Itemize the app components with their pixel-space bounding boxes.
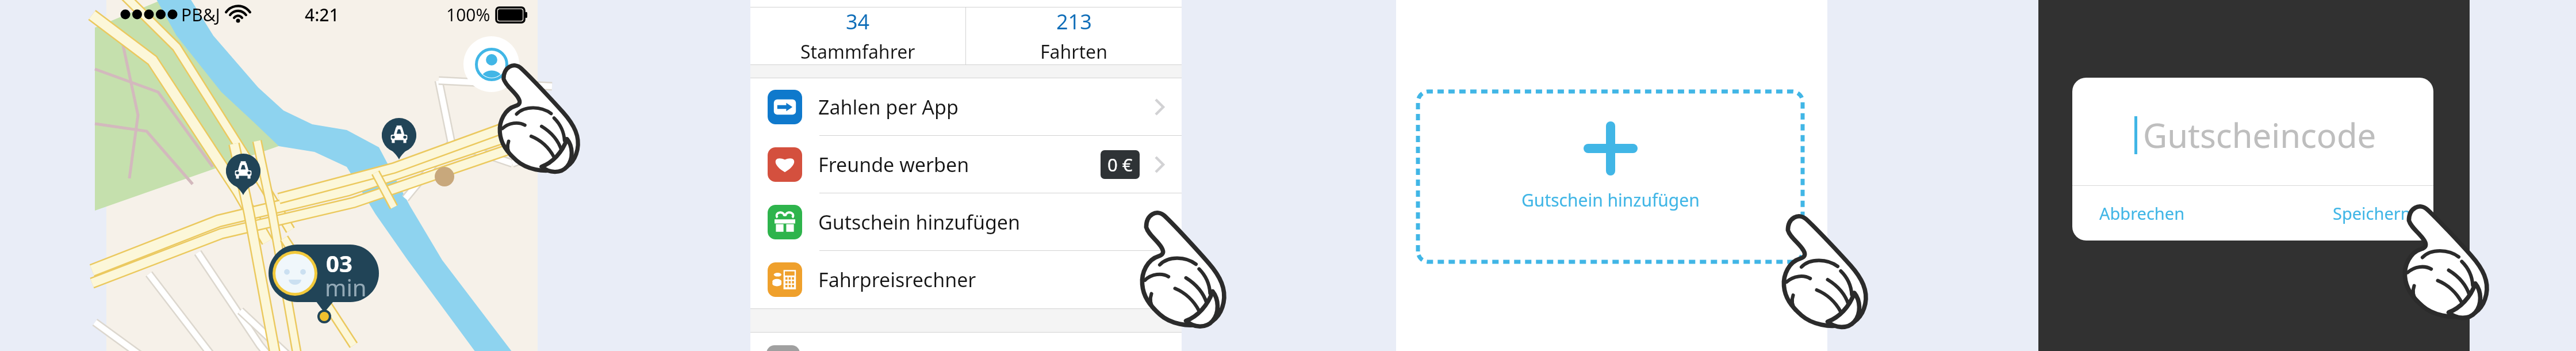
- button[interactable]: Speichern: [2253, 186, 2433, 241]
- staticText: 100%: [446, 3, 490, 26]
- staticText: Abbrechen: [2099, 202, 2185, 224]
- staticText: 213: [1056, 7, 1092, 36]
- staticText: Speichern: [2333, 202, 2411, 224]
- staticText: 4:21: [305, 3, 339, 26]
- button[interactable]: Abbrechen: [2072, 186, 2253, 241]
- button[interactable]: My location: [463, 36, 519, 92]
- staticText: Stammfahrer: [800, 39, 915, 64]
- button[interactable]: 34: [750, 7, 965, 64]
- staticText: Gutscheincode: [2143, 112, 2376, 158]
- button[interactable]: Gutschein hinzufügen: [750, 193, 1182, 250]
- staticText: PB&J: [181, 3, 220, 26]
- button[interactable]: Fahrpreisrechner: [750, 251, 1182, 308]
- staticText: Gutschein hinzufügen: [818, 209, 1021, 235]
- staticText: Fahrten: [1040, 39, 1107, 64]
- button[interactable]: Zahlen per App: [750, 78, 1182, 135]
- staticText: Zahlen per App: [818, 94, 959, 120]
- staticText: min: [325, 272, 367, 303]
- staticText: Fahrpreisrechner: [818, 266, 976, 293]
- staticText: Gutschein hinzufügen: [1521, 188, 1700, 212]
- staticText: 0 €: [1107, 152, 1133, 177]
- staticText: 03: [326, 247, 352, 278]
- button[interactable]: 213: [966, 7, 1182, 64]
- staticText: 34: [846, 7, 870, 36]
- button[interactable]: Freunde werben: [750, 136, 1182, 193]
- staticText: Freunde werben: [818, 151, 969, 178]
- button[interactable]: Gutschein hinzufügen: [1418, 91, 1803, 262]
